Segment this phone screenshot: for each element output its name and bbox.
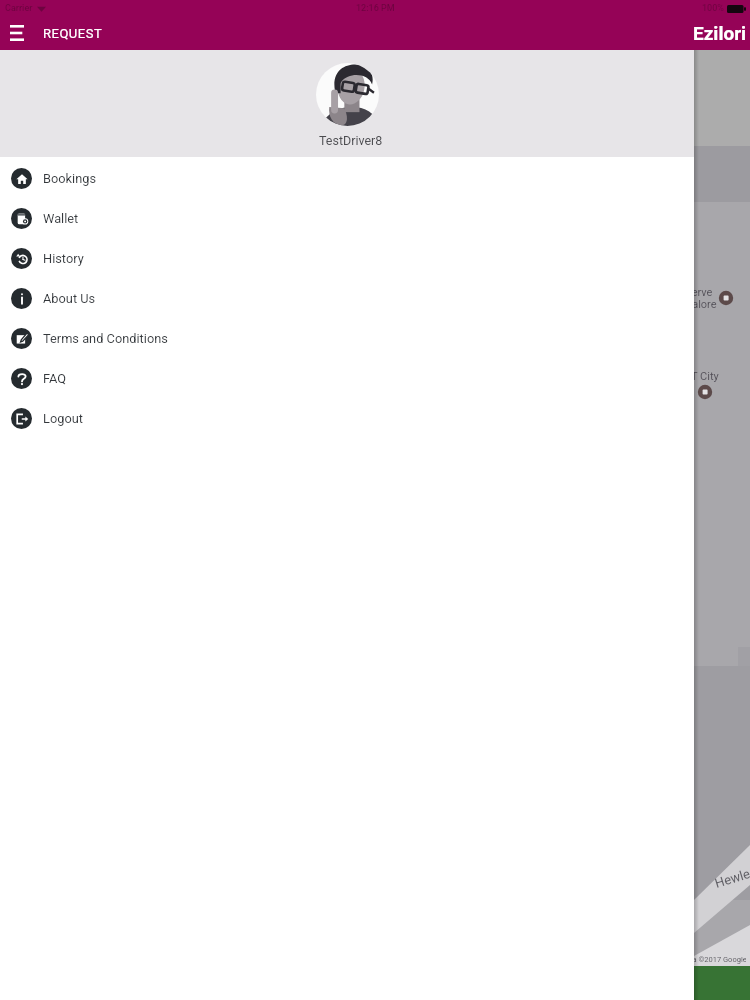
staticText: ta ©2017 Google [694,955,746,964]
staticText: T City [694,370,747,383]
staticText: Terms and Conditions [43,331,168,346]
staticText: Wallet [43,211,79,226]
staticText: Logout [43,411,83,426]
staticText: Hewle [713,860,750,891]
button[interactable]: FAQ [0,358,694,398]
staticText: History [43,251,84,266]
button[interactable]: TestDriver8 [0,50,694,157]
staticText: Carrier [5,3,33,14]
staticText: 12:16 PM [356,3,395,14]
button[interactable]: Logout [0,398,694,438]
staticText: serve [694,286,742,299]
button[interactable]: Bookings [0,158,694,198]
button[interactable]: Go online [694,966,750,1000]
staticText: FAQ [43,371,67,386]
staticText: Ezilori [693,22,747,44]
button[interactable]: Open navigation menu [0,16,34,50]
staticText: galore [694,298,742,311]
button[interactable]: About Us [0,278,694,318]
button[interactable]: Terms and Conditions [0,318,694,358]
button[interactable]: History [0,238,694,278]
staticText: REQUEST [43,26,103,41]
staticText: About Us [43,291,96,306]
button[interactable]: Wallet [0,198,694,238]
staticText: Bookings [43,171,97,186]
staticText: 100% [702,3,724,14]
staticText: TestDriver8 [319,133,383,148]
